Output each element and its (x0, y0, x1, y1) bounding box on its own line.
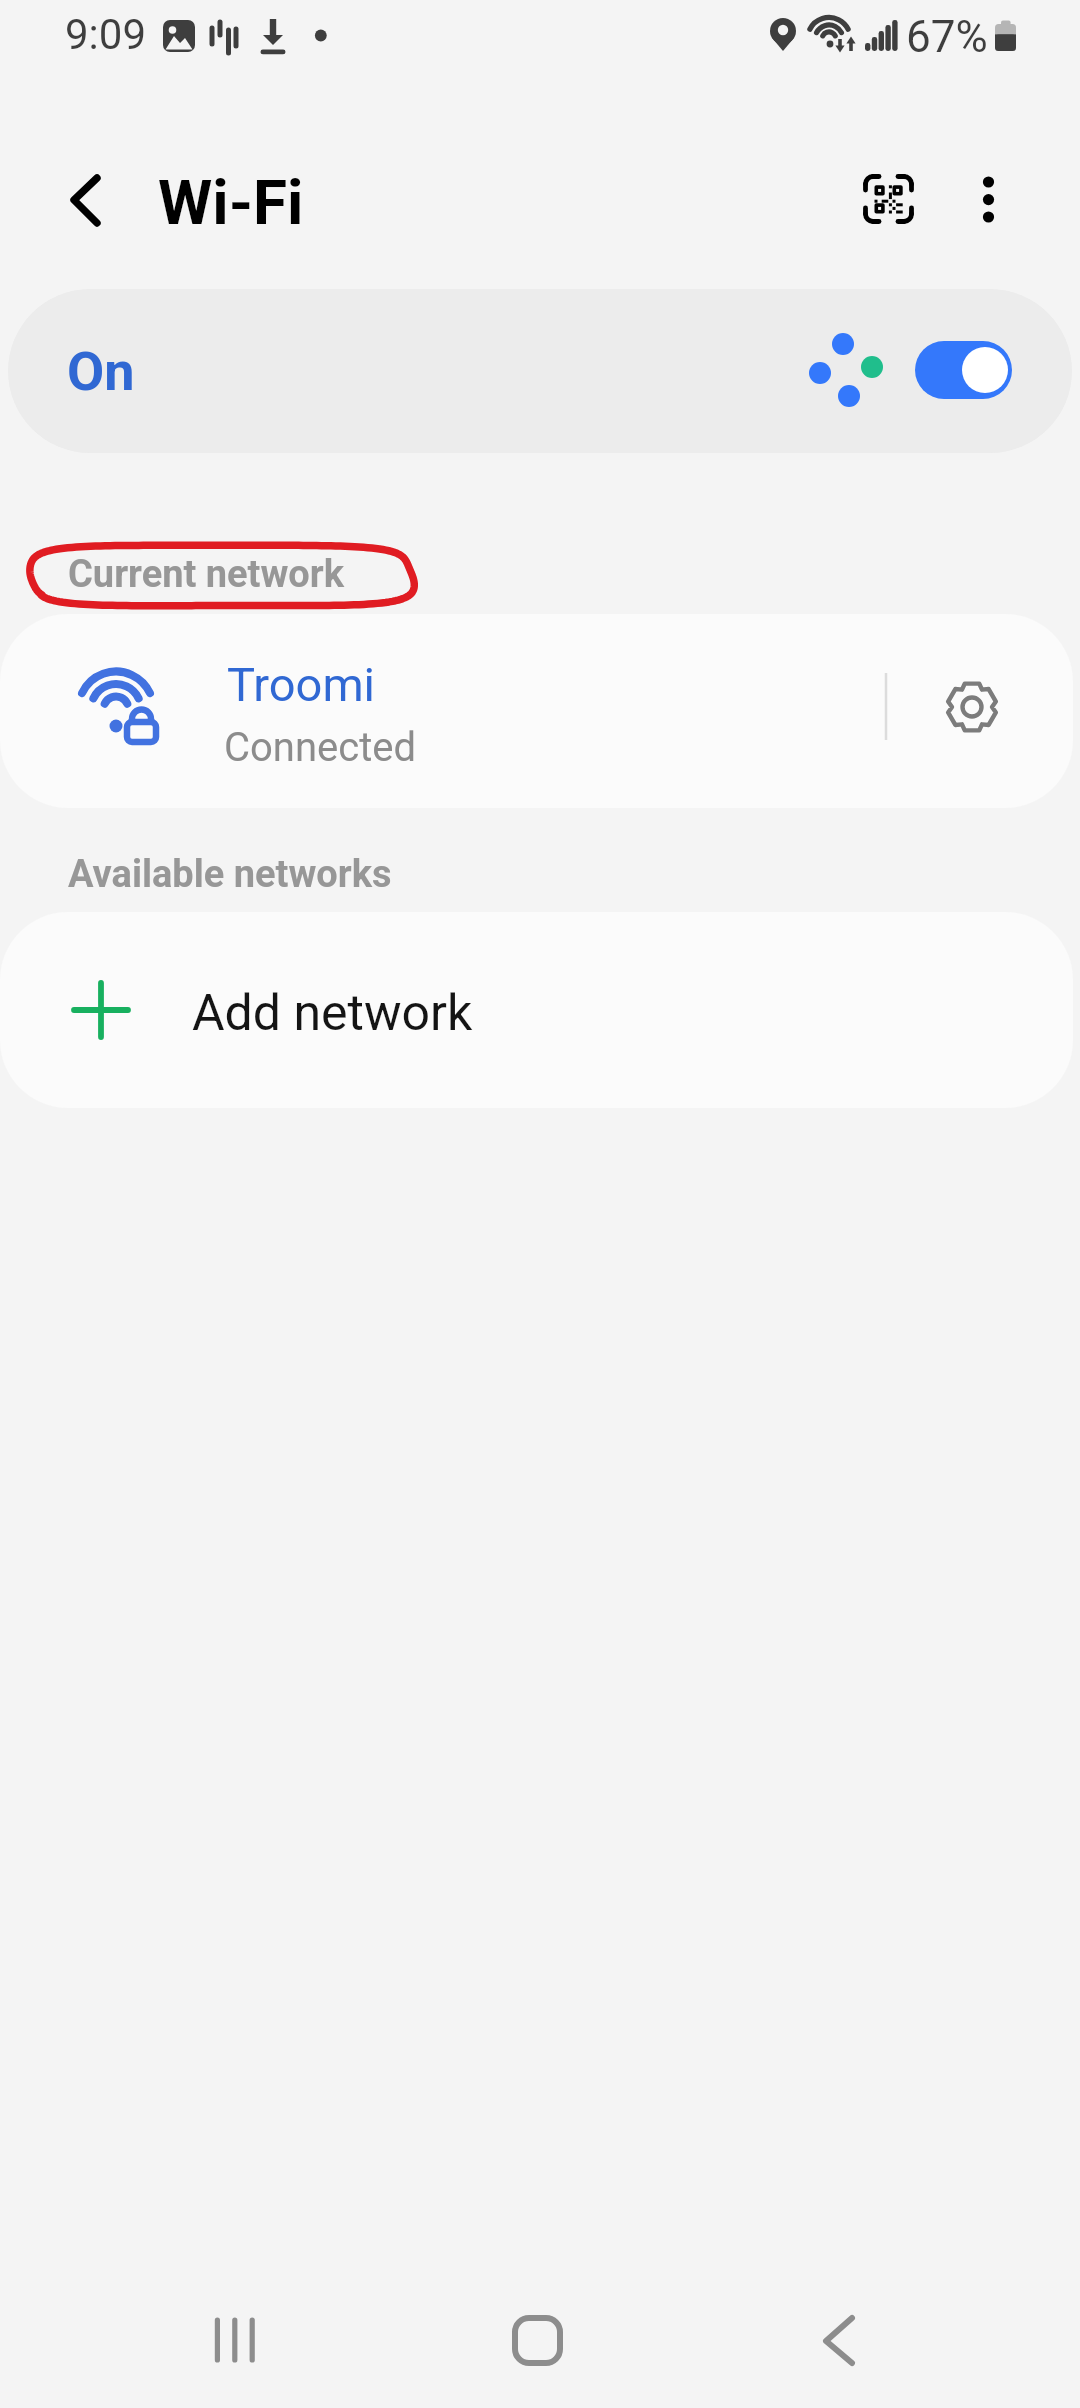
button[interactable]: On (8, 289, 1072, 453)
button[interactable]: Recent apps (182, 2296, 292, 2406)
button[interactable]: Home (485, 2296, 595, 2406)
staticText: Troomi (227, 657, 376, 712)
staticText: 9:09 (65, 10, 146, 59)
button[interactable]: More options (942, 154, 1032, 244)
button[interactable]: Turn Wi-Fi off (915, 341, 1012, 399)
button[interactable]: Navigate up (42, 145, 138, 241)
button[interactable]: Scan QR code (843, 154, 933, 244)
staticText: 67% (906, 11, 988, 63)
staticText: Available networks (68, 852, 392, 897)
button[interactable]: Troomi (0, 614, 1073, 808)
staticText: Add network (192, 984, 473, 1043)
button[interactable]: Back (790, 2296, 900, 2406)
staticText: Connected (224, 724, 417, 771)
button[interactable]: Network settings (922, 657, 1022, 757)
staticText: Wi-Fi (158, 166, 304, 239)
staticText: Current network (68, 552, 345, 597)
staticText: On (67, 340, 135, 403)
button[interactable]: Add network (0, 912, 1073, 1108)
